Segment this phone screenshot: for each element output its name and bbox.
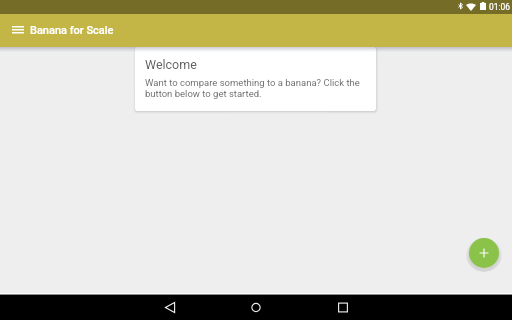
staticText: Banana for Scale xyxy=(30,24,114,37)
button[interactable]: Back xyxy=(158,295,182,320)
staticText: Welcome xyxy=(145,57,197,72)
button[interactable]: Add xyxy=(465,234,503,272)
button[interactable]: Welcome xyxy=(135,47,376,111)
button[interactable]: Open navigation menu xyxy=(8,21,28,41)
staticText: Want to compare something to a banana? C… xyxy=(145,77,367,99)
staticText: 01:06 xyxy=(489,2,510,12)
button[interactable]: Home xyxy=(244,295,268,320)
button[interactable]: Recent apps xyxy=(331,295,355,320)
